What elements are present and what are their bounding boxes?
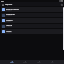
button[interactable]: Open navigation menu bbox=[1, 3, 4, 6]
staticText: Home bbox=[10, 62, 14, 64]
staticText: Artists bbox=[6, 30, 12, 32]
staticText: You bbox=[51, 62, 54, 64]
staticText: Recently played bbox=[6, 8, 19, 10]
staticText: Library bbox=[37, 62, 41, 64]
button[interactable]: Artists bbox=[1, 29, 63, 34]
staticText: Downloads bbox=[6, 13, 15, 15]
staticText: Library bbox=[5, 3, 13, 6]
staticText: 8 items bbox=[6, 21, 11, 23]
button[interactable]: Search bbox=[23, 60, 27, 64]
staticText: 12 items bbox=[6, 15, 12, 17]
button[interactable]: Playlists bbox=[1, 18, 63, 23]
button[interactable]: Recently played bbox=[1, 7, 63, 12]
staticText: 19 items bbox=[6, 32, 12, 34]
staticText: 31 items bbox=[6, 26, 12, 28]
staticText: 9:41 bbox=[1, 0, 5, 2]
staticText: 24 items bbox=[6, 10, 12, 12]
staticText: Search bbox=[23, 62, 27, 64]
staticText: Albums bbox=[6, 24, 13, 26]
button[interactable]: You bbox=[50, 60, 54, 64]
button[interactable]: Search bbox=[60, 3, 63, 6]
button[interactable]: Library bbox=[37, 60, 41, 64]
button[interactable]: Albums bbox=[1, 24, 63, 28]
button[interactable]: Downloads bbox=[1, 13, 63, 17]
staticText: Playlists bbox=[6, 19, 13, 21]
button[interactable]: Home bbox=[10, 60, 14, 64]
